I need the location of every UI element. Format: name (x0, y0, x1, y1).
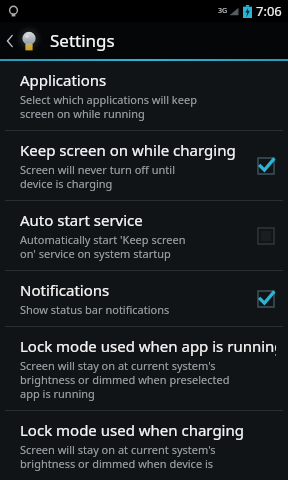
button[interactable]: Lock mode used when app is running (0, 327, 288, 410)
staticText: Auto start service (20, 210, 143, 230)
staticText: Lock mode used when charging (20, 420, 244, 440)
button[interactable]: Keep screen on while charging (0, 131, 288, 200)
staticText: Applications (20, 70, 107, 90)
staticText: Settings (50, 29, 115, 52)
staticText: Screen will never turn off until device … (20, 162, 175, 191)
staticText: 7:06 (256, 2, 282, 20)
button[interactable]: Applications (0, 61, 288, 130)
button[interactable]: Navigate up (0, 22, 41, 59)
staticText: Screen will stay on at current system's … (20, 442, 216, 471)
staticText: Automatically start 'Keep screen on' ser… (20, 232, 186, 261)
button[interactable]: Checked (254, 154, 278, 178)
button[interactable]: Auto start service (0, 201, 288, 270)
staticText: Select which applications will keep scre… (20, 92, 197, 121)
staticText: 3G (218, 6, 228, 16)
staticText: Notifications (20, 280, 110, 300)
button[interactable]: Notifications (0, 271, 288, 326)
button[interactable]: Checked (254, 287, 278, 311)
staticText: Lock mode used when app is running (20, 336, 276, 356)
staticText: Keep screen on while charging (20, 140, 236, 160)
button[interactable]: Unchecked (254, 224, 278, 248)
button[interactable]: Lock mode used when charging (0, 411, 288, 480)
staticText: Screen will stay on at current system's … (20, 358, 230, 401)
staticText: Show status bar notifications (20, 302, 170, 317)
